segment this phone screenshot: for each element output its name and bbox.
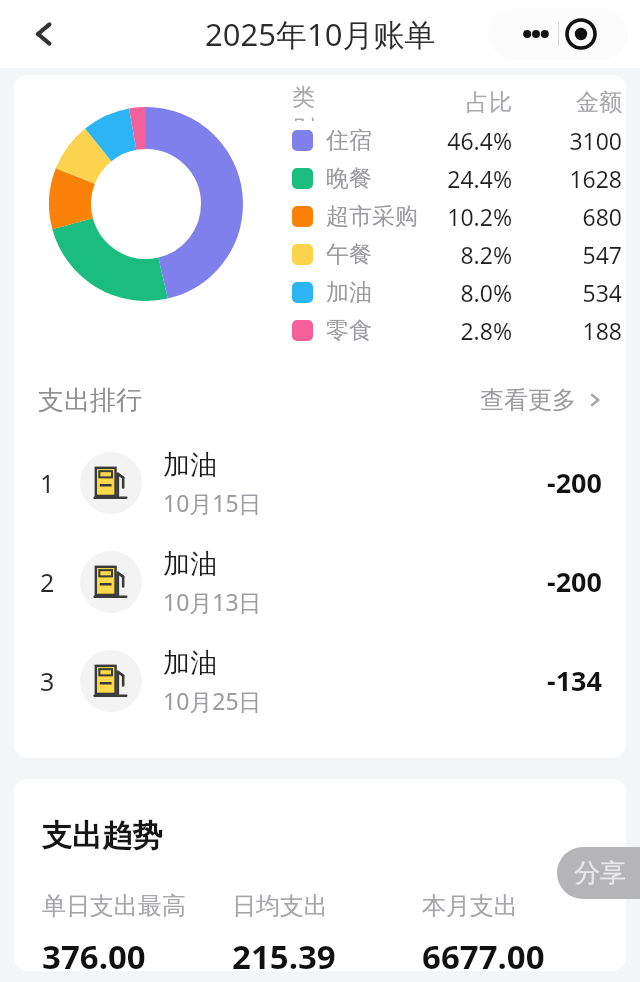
staticText: 6677.00 (422, 934, 545, 971)
staticText: 加油 (163, 547, 217, 581)
button[interactable]: 查看更多 (480, 385, 604, 415)
staticText: 10月13日 (163, 586, 262, 617)
staticText: 1 (40, 466, 66, 500)
staticText: 3 (40, 664, 66, 698)
button[interactable]: 菜单 (488, 8, 628, 60)
staticText: 2025年10月账单 (205, 13, 436, 55)
staticText: 支出排行 (38, 384, 142, 417)
staticText: 分享 (574, 857, 626, 890)
staticText: 类别 (292, 83, 322, 121)
staticText: 零食 (326, 316, 372, 345)
staticText: 215.39 (232, 934, 336, 971)
staticText: 查看更多 (480, 385, 576, 415)
staticText: 1628 (542, 163, 622, 194)
staticText: 24.4% (426, 163, 512, 194)
staticText: 本月支出 (422, 891, 518, 921)
staticText: 2.8% (426, 315, 512, 346)
staticText: 8.2% (426, 239, 512, 270)
button[interactable]: 2 (14, 532, 626, 631)
staticText: 10.2% (426, 201, 512, 232)
staticText: 晚餐 (326, 164, 372, 193)
staticText: 加油 (326, 278, 372, 307)
staticText: 534 (542, 277, 622, 308)
button[interactable]: 返回 (16, 6, 72, 62)
staticText: -134 (547, 662, 602, 699)
staticText: 加油 (163, 448, 217, 482)
staticText: 188 (542, 315, 622, 346)
staticText: -200 (547, 464, 602, 501)
staticText: 午餐 (326, 240, 372, 269)
staticText: 支出趋势 (42, 817, 162, 855)
staticText: 占比 (426, 88, 512, 117)
staticText: 超市采购 (326, 202, 418, 231)
button[interactable]: 1 (14, 433, 626, 532)
button[interactable]: 晚餐 (292, 159, 622, 197)
staticText: -200 (547, 563, 602, 600)
button[interactable]: 午餐 (292, 235, 622, 273)
button[interactable]: 超市采购 (292, 197, 622, 235)
staticText: 2 (40, 565, 66, 599)
staticText: 日均支出 (232, 891, 328, 921)
staticText: 3100 (542, 125, 622, 156)
staticText: 680 (542, 201, 622, 232)
staticText: 住宿 (326, 126, 372, 155)
staticText: 547 (542, 239, 622, 270)
staticText: 加油 (163, 646, 217, 680)
staticText: 46.4% (426, 125, 512, 156)
staticText: 10月25日 (163, 685, 262, 716)
staticText: 10月15日 (163, 487, 262, 518)
button[interactable]: 加油 (292, 273, 622, 311)
staticText: 金额 (542, 88, 622, 117)
button[interactable]: 零食 (292, 311, 622, 349)
button[interactable]: 3 (14, 631, 626, 730)
staticText: 8.0% (426, 277, 512, 308)
staticText: 376.00 (42, 934, 146, 971)
button[interactable]: 住宿 (292, 121, 622, 159)
button[interactable]: 分享 (557, 847, 640, 899)
staticText: 单日支出最高 (42, 891, 186, 921)
